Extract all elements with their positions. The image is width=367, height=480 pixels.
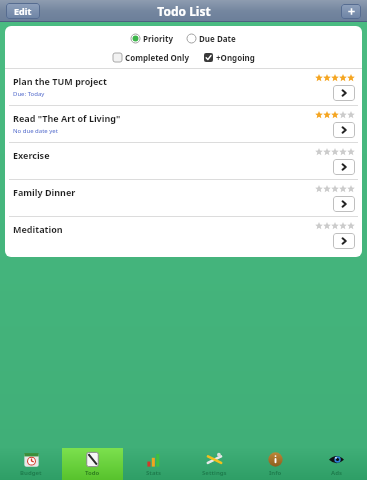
staticText: Exercise — [13, 149, 50, 161]
button[interactable]: Read "The Art of Living" — [5, 106, 362, 142]
button[interactable]: Open details — [333, 85, 355, 101]
staticText: Family Dinner — [13, 186, 76, 198]
staticText: Ads — [331, 469, 342, 477]
button[interactable]: Todo — [62, 448, 123, 480]
button[interactable]: Open details — [333, 159, 355, 175]
staticText: Plan the TUM project — [13, 75, 107, 87]
staticText: Completed Only — [125, 52, 190, 63]
button[interactable]: Meditation — [5, 217, 362, 253]
button[interactable]: Edit — [6, 3, 40, 19]
button[interactable]: Add todo — [341, 4, 361, 19]
button[interactable]: Plan the TUM project — [5, 69, 362, 105]
button[interactable]: Ads — [306, 448, 367, 480]
staticText: +Ongoing — [216, 52, 255, 63]
button[interactable]: Open details — [333, 122, 355, 138]
button[interactable]: Open details — [333, 233, 355, 249]
staticText: Settings — [202, 469, 227, 477]
button[interactable]: Exercise — [5, 143, 362, 179]
staticText: Todo — [85, 469, 100, 477]
button[interactable]: Open details — [333, 196, 355, 212]
staticText: Priority — [143, 33, 173, 44]
staticText: Due: Today — [13, 90, 45, 98]
button[interactable]: Info — [245, 448, 306, 480]
staticText: Budget — [20, 469, 42, 477]
staticText: Meditation — [13, 223, 63, 235]
button[interactable]: +Ongoing — [202, 50, 257, 65]
button[interactable]: Budget — [0, 448, 62, 480]
staticText: Todo List — [157, 3, 211, 19]
staticText: Edit — [14, 5, 32, 17]
staticText: Info — [269, 469, 282, 477]
button[interactable]: Completed Only — [111, 50, 192, 65]
button[interactable]: Stats — [123, 448, 184, 480]
staticText: Due Date — [199, 33, 236, 44]
staticText: No due date yet — [13, 127, 58, 135]
button[interactable]: Due Date — [185, 31, 238, 46]
button[interactable]: Settings — [184, 448, 245, 480]
staticText: Read "The Art of Living" — [13, 112, 121, 124]
staticText: Stats — [146, 469, 162, 477]
button[interactable]: Priority — [129, 31, 175, 46]
button[interactable]: Family Dinner — [5, 180, 362, 216]
